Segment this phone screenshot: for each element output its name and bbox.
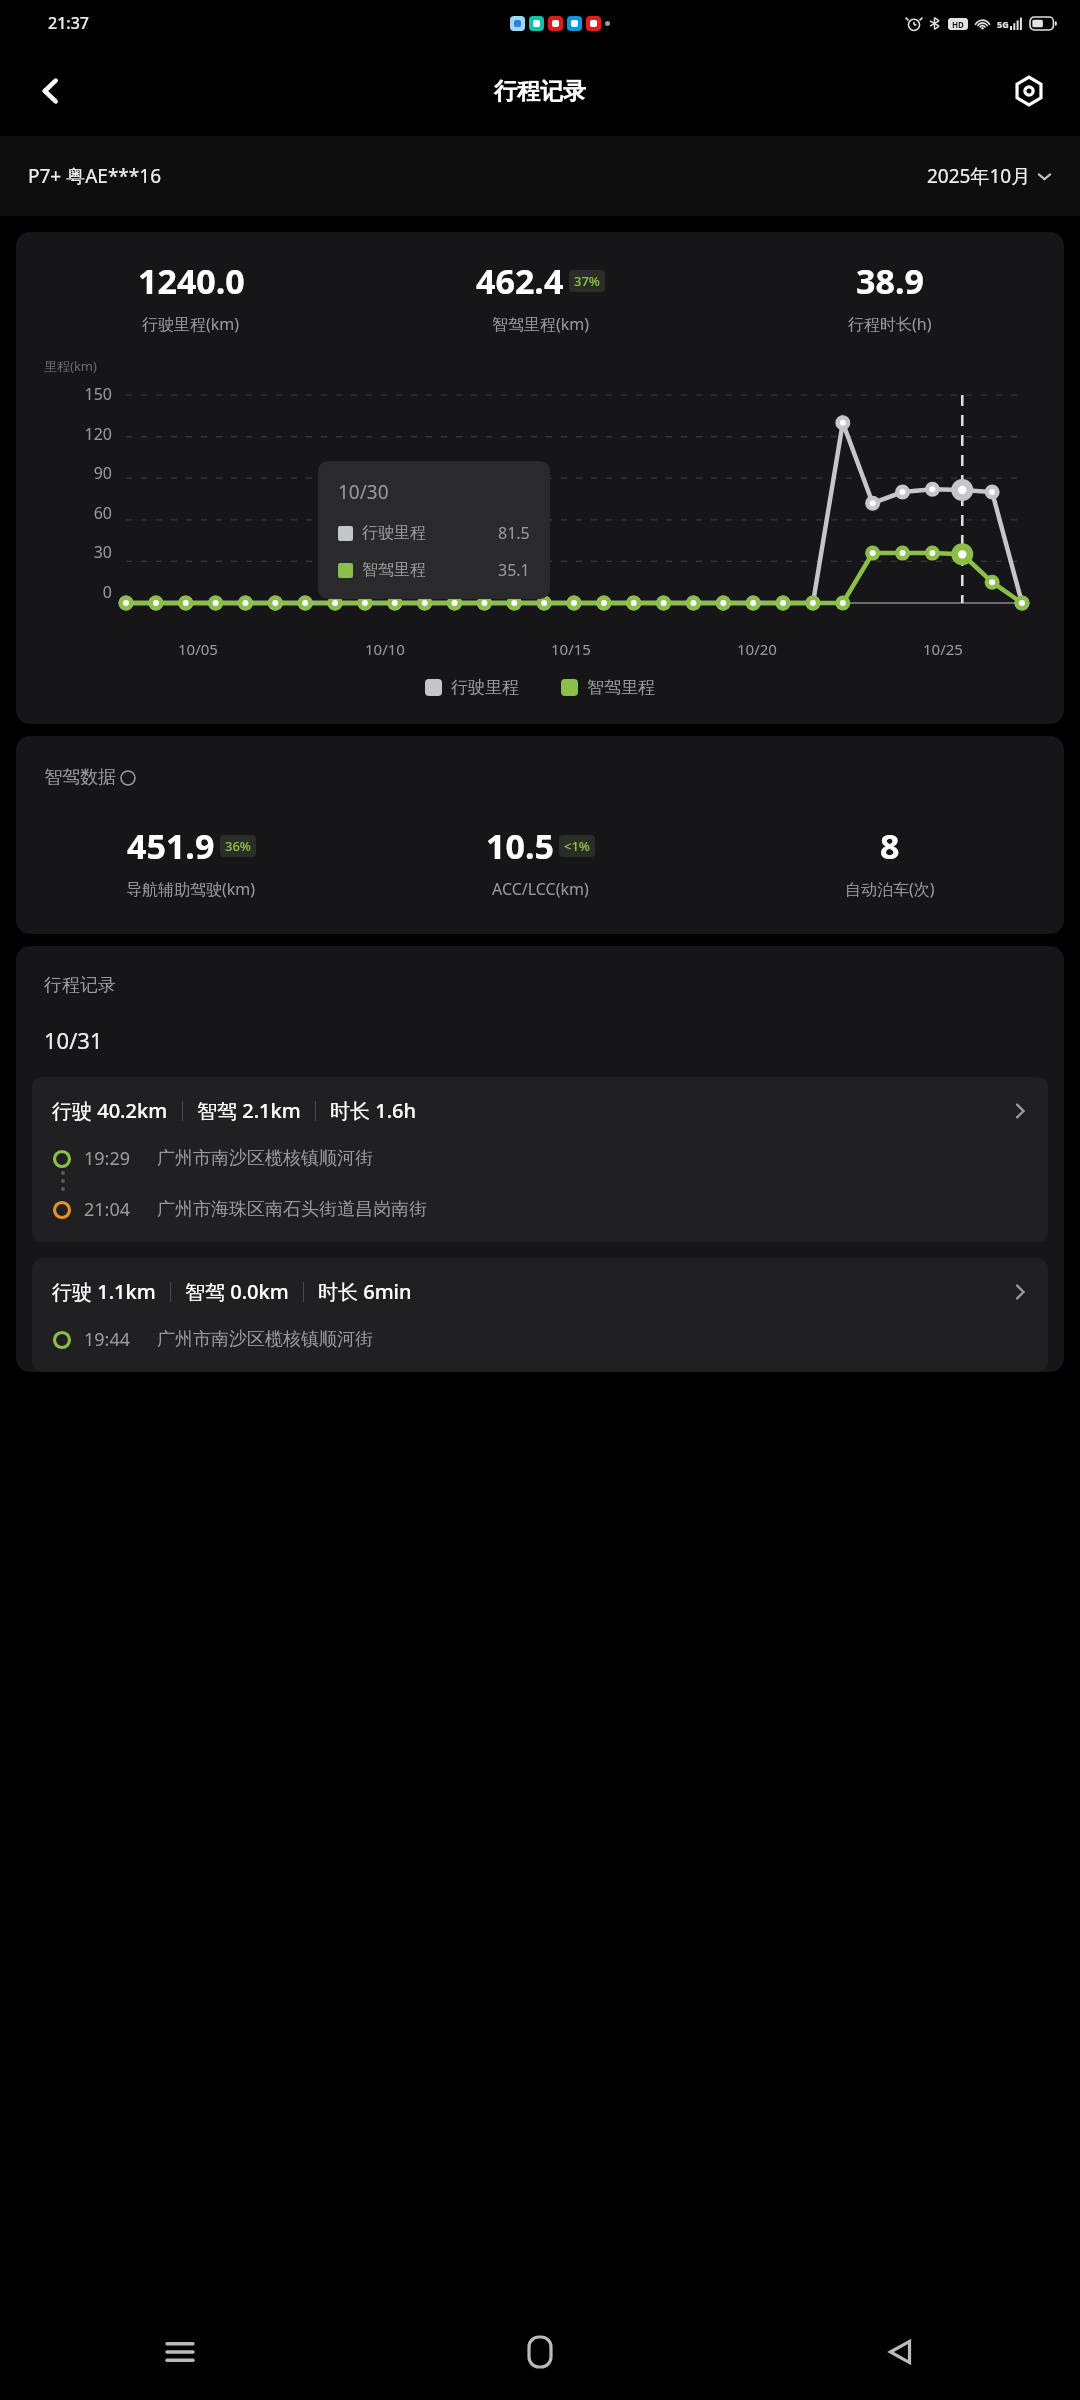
button[interactable]: Recents [0, 2304, 360, 2400]
staticText: 19:44 [84, 1327, 131, 1352]
button[interactable]: P7+ 粤AE***16 [28, 163, 162, 189]
staticText: 1240.0 [138, 258, 245, 304]
staticText: 智驾里程 [587, 677, 655, 698]
staticText: 38.9 [856, 258, 924, 304]
staticText: 智驾里程(km) [492, 313, 590, 335]
other: Info [120, 770, 136, 786]
button[interactable]: 行驶 1.1km [32, 1258, 1048, 1372]
staticText: 462.4 [476, 258, 564, 304]
staticText: 81.5 [498, 522, 530, 544]
staticText: 智驾里程 [362, 560, 426, 580]
staticText: 广州市南沙区榄核镇顺河街 [157, 1328, 373, 1351]
staticText: 10/15 [551, 639, 591, 659]
staticText: 时长 1.6h [330, 1097, 417, 1124]
staticText: 10/30 [338, 479, 389, 505]
staticText: 37% [574, 272, 600, 290]
staticText: 10/25 [923, 639, 963, 659]
staticText: 150 [84, 383, 112, 405]
staticText: 30 [93, 541, 112, 563]
staticText: 10/10 [365, 639, 405, 659]
staticText: 智驾 0.0km [185, 1278, 289, 1305]
button[interactable]: Home [360, 2304, 720, 2400]
staticText: 451.9 [127, 823, 215, 869]
staticText: 10.5 [486, 823, 554, 869]
staticText: <1% [564, 837, 590, 855]
staticText: 行驶 1.1km [52, 1278, 156, 1305]
staticText: 90 [93, 462, 112, 484]
staticText: 5G [997, 18, 1009, 30]
staticText: 自动泊车(次) [845, 878, 935, 900]
button[interactable]: 智驾数据 [44, 766, 136, 789]
staticText: 行驶 40.2km [52, 1097, 168, 1124]
button[interactable]: Settings [1000, 62, 1058, 120]
staticText: 行程记录 [494, 77, 586, 106]
staticText: 8 [880, 823, 900, 869]
staticText: 时长 6min [318, 1278, 412, 1305]
staticText: 行驶里程 [451, 677, 519, 698]
staticText: 35.1 [498, 559, 530, 581]
staticText: 广州市海珠区南石头街道昌岗南街 [157, 1198, 427, 1221]
staticText: 行程记录 [44, 974, 116, 997]
staticText: 19:29 [84, 1146, 131, 1171]
staticText: 0 [102, 581, 112, 603]
staticText: 120 [84, 423, 112, 445]
staticText: ACC/LCC(km) [492, 878, 589, 900]
staticText: 智驾 2.1km [197, 1097, 301, 1124]
button[interactable]: 行驶里程 [425, 677, 519, 698]
staticText: 导航辅助驾驶(km) [126, 878, 256, 900]
staticText: 10/31 [44, 1025, 103, 1055]
staticText: 60 [93, 502, 112, 524]
staticText: 21:04 [84, 1197, 131, 1222]
staticText: 智驾数据 [44, 766, 116, 789]
staticText: 行驶里程(km) [142, 313, 240, 335]
staticText: 里程(km) [44, 357, 97, 375]
staticText: 36% [225, 837, 251, 855]
staticText: 2025年10月 [927, 163, 1031, 189]
staticText: HD [952, 19, 964, 30]
button[interactable]: 2025年10月 [927, 163, 1052, 189]
button[interactable]: Back [22, 62, 80, 120]
staticText: 行程时长(h) [848, 313, 932, 335]
button[interactable]: Back [720, 2304, 1080, 2400]
staticText: 21:37 [48, 12, 89, 34]
staticText: 行驶里程 [362, 523, 426, 543]
button[interactable]: 智驾里程 [561, 677, 655, 698]
staticText: 10/05 [178, 639, 218, 659]
staticText: 广州市南沙区榄核镇顺河街 [157, 1147, 373, 1170]
staticText: 10/20 [737, 639, 777, 659]
button[interactable]: 行驶 40.2km [32, 1077, 1048, 1242]
